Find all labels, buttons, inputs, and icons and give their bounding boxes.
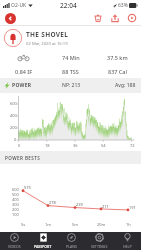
staticText: 600 [10, 101, 17, 106]
button[interactable]: Play [127, 13, 137, 23]
button[interactable]: PASSPORT [29, 232, 57, 250]
button[interactable]: Back [5, 13, 16, 24]
staticText: 100 [12, 212, 19, 217]
button[interactable]: Share [110, 13, 120, 23]
staticText: 02 Mar, 2020 at 16:19 [26, 41, 68, 47]
staticText: Avg: 188 [115, 82, 136, 89]
staticText: 200 [12, 207, 19, 212]
staticText: NP: 213 [62, 82, 81, 89]
staticText: 191 [129, 205, 136, 210]
staticText: 400 [10, 113, 17, 118]
staticText: 278 [49, 200, 56, 205]
staticText: 0 [14, 137, 17, 142]
staticText: 211 [102, 204, 109, 209]
staticText: VIDEOS [8, 244, 21, 249]
staticText: SETTINGS [91, 244, 108, 249]
staticText: 400 [12, 197, 19, 202]
staticText: 74 Min [62, 54, 80, 61]
staticText: 18 [45, 143, 50, 148]
staticText: THE SHOVEL [26, 30, 69, 39]
button[interactable]: Delete [93, 13, 103, 23]
staticText: 575 [24, 185, 31, 190]
staticText: 20m [97, 222, 106, 227]
staticText: 0.84 IF [15, 68, 33, 75]
staticText: 600 [12, 187, 19, 192]
staticText: 54 [101, 143, 106, 148]
staticText: 500 [12, 192, 19, 197]
staticText: 37.5 km [107, 54, 128, 61]
staticText: POWER [12, 82, 32, 89]
staticText: 1m [45, 222, 52, 227]
staticText: 837 Cal [108, 68, 127, 75]
staticText: 88 TSS [62, 68, 79, 75]
staticText: 1h [126, 222, 131, 227]
staticText: 239 [76, 202, 83, 207]
staticText: 300 [12, 202, 19, 207]
staticText: 0 [18, 143, 21, 148]
button[interactable]: SETTINGS [85, 232, 113, 250]
staticText: O2-UK [11, 2, 27, 9]
staticText: 36 [73, 143, 78, 148]
staticText: 63% [118, 2, 128, 9]
staticText: 72 [130, 143, 135, 148]
button[interactable]: PLANS [57, 232, 85, 250]
staticText: POWER BESTS [5, 155, 41, 161]
button[interactable]: VIDEOS [0, 232, 29, 250]
staticText: 22:04 [60, 1, 77, 10]
staticText: 5s [21, 222, 26, 227]
button[interactable]: HELP [113, 232, 141, 250]
staticText: HELP [123, 244, 132, 249]
staticText: 200 [10, 125, 17, 130]
staticText: 5m [72, 222, 79, 227]
staticText: PASSPORT [34, 244, 52, 249]
staticText: PLANS [66, 244, 77, 249]
